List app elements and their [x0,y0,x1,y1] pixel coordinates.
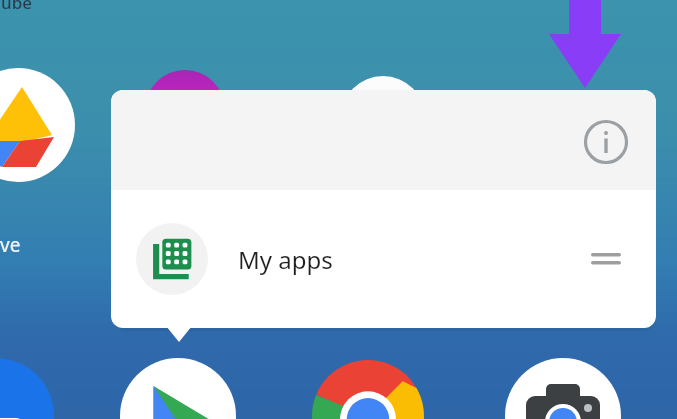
button[interactable]: App info [580,116,632,168]
button[interactable]: Reorder [584,239,628,279]
staticText: ve [0,232,21,258]
button[interactable]: My apps [111,190,656,328]
staticText: My apps [238,243,333,276]
staticText: ube [1,0,32,14]
